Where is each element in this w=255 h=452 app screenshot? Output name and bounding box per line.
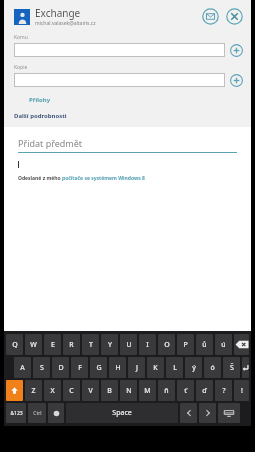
button[interactable]: ů: [196, 334, 213, 355]
button[interactable]: ?: [215, 380, 232, 401]
button[interactable]: Shift: [6, 380, 23, 401]
button[interactable]: X: [44, 380, 61, 401]
staticText: U: [126, 340, 132, 350]
button[interactable]: Backspace: [234, 334, 249, 355]
button[interactable]: ý: [185, 357, 202, 378]
staticText: !: [241, 386, 243, 396]
staticText: X: [50, 386, 55, 396]
staticText: &123: [10, 410, 23, 417]
button[interactable]: ú: [215, 334, 232, 355]
staticText: Space: [112, 408, 132, 418]
button[interactable]: Microphone: [48, 403, 64, 423]
staticText: ú: [221, 340, 226, 350]
button[interactable]: Přidat předmět: [18, 137, 237, 153]
staticText: O: [164, 340, 170, 350]
staticText: ó: [210, 363, 215, 373]
button[interactable]: T: [82, 334, 99, 355]
button[interactable]: &123: [6, 403, 26, 423]
staticText: ď: [202, 386, 207, 396]
staticText: S: [40, 363, 44, 373]
staticText: P: [183, 340, 188, 350]
button[interactable]: [14, 43, 225, 57]
staticText: C: [69, 386, 74, 396]
button[interactable]: D: [52, 357, 69, 378]
staticText: G: [96, 363, 102, 373]
button[interactable]: ň: [158, 380, 175, 401]
staticText: Přidat předmět: [18, 137, 83, 149]
button[interactable]: L: [166, 357, 183, 378]
button[interactable]: ť: [177, 380, 194, 401]
staticText: Exchange: [35, 6, 81, 20]
staticText: Z: [31, 386, 36, 396]
staticText: Přílohy: [29, 96, 51, 104]
button[interactable]: H: [109, 357, 126, 378]
staticText: Y: [108, 340, 112, 350]
button[interactable]: ó: [204, 357, 221, 378]
button[interactable]: Send: [202, 8, 219, 25]
staticText: Š: [230, 363, 234, 373]
staticText: N: [126, 386, 132, 396]
staticText: B: [107, 386, 112, 396]
button[interactable]: Close: [226, 8, 243, 25]
button[interactable]: B: [101, 380, 118, 401]
button[interactable]: J: [128, 357, 145, 378]
button[interactable]: Left: [180, 403, 197, 423]
staticText: H: [115, 363, 121, 373]
staticText: počítače se systémem Windows 8: [62, 175, 145, 182]
button[interactable]: P: [177, 334, 194, 355]
button[interactable]: U: [120, 334, 137, 355]
button[interactable]: E: [44, 334, 61, 355]
button[interactable]: [14, 73, 225, 87]
button[interactable]: K: [147, 357, 164, 378]
staticText: Q: [12, 340, 18, 350]
button[interactable]: Hide keyboard: [218, 403, 240, 423]
button[interactable]: Right: [199, 403, 216, 423]
staticText: ?: [222, 386, 226, 396]
staticText: D: [58, 363, 64, 373]
button[interactable]: Další podrobnosti: [14, 111, 67, 121]
button[interactable]: !: [234, 380, 249, 401]
button[interactable]: N: [120, 380, 137, 401]
button[interactable]: Enter: [242, 357, 249, 378]
button[interactable]: F: [71, 357, 88, 378]
button[interactable]: V: [82, 380, 99, 401]
button[interactable]: M: [139, 380, 156, 401]
button[interactable]: A: [14, 357, 31, 378]
staticText: Odeslané z mého: [18, 175, 62, 182]
staticText: ů: [202, 340, 207, 350]
staticText: R: [69, 340, 74, 350]
staticText: Další podrobnosti: [14, 112, 67, 120]
staticText: ý: [192, 363, 196, 373]
staticText: T: [89, 340, 93, 350]
staticText: ť: [184, 386, 187, 396]
button[interactable]: Š: [223, 357, 240, 378]
staticText: M: [144, 386, 151, 396]
button[interactable]: I: [139, 334, 156, 355]
button[interactable]: Q: [6, 334, 23, 355]
button[interactable]: Add recipient for Kopie: [230, 74, 243, 87]
button[interactable]: W: [25, 334, 42, 355]
staticText: ň: [164, 386, 169, 396]
staticText: W: [30, 340, 37, 350]
button[interactable]: Y: [101, 334, 118, 355]
staticText: E: [51, 340, 55, 350]
staticText: L: [173, 363, 177, 373]
staticText: Kopie: [14, 64, 28, 71]
button[interactable]: O: [158, 334, 175, 355]
staticText: Ctrl: [33, 410, 42, 417]
staticText: A: [20, 363, 25, 373]
button[interactable]: Space: [66, 403, 178, 423]
button[interactable]: Z: [25, 380, 42, 401]
staticText: michal.valasek@altairis.cz: [35, 20, 96, 27]
staticText: J: [136, 363, 138, 373]
button[interactable]: S: [33, 357, 50, 378]
staticText: K: [153, 363, 158, 373]
button[interactable]: ď: [196, 380, 213, 401]
staticText: V: [88, 386, 93, 396]
button[interactable]: Add recipient for Komu: [230, 44, 243, 57]
button[interactable]: G: [90, 357, 107, 378]
button[interactable]: Přílohy: [28, 95, 52, 105]
button[interactable]: R: [63, 334, 80, 355]
button[interactable]: Ctrl: [28, 403, 46, 423]
button[interactable]: C: [63, 380, 80, 401]
